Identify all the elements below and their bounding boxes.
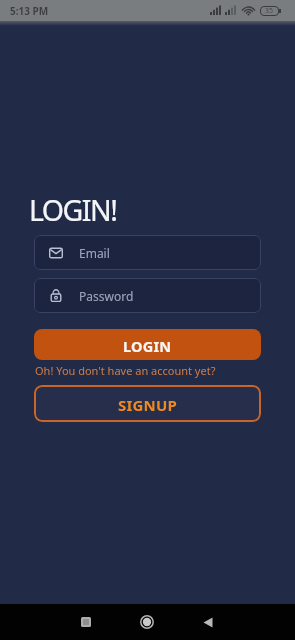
staticText: 5:13 PM bbox=[10, 4, 49, 18]
button[interactable] bbox=[76, 612, 96, 632]
button[interactable]: LOGIN bbox=[34, 329, 261, 360]
staticText: LOGIN! bbox=[29, 191, 117, 230]
staticText: Oh! You don't have an account yet? bbox=[35, 363, 216, 378]
button[interactable]: SIGNUP bbox=[34, 385, 261, 422]
button[interactable]: Email bbox=[34, 235, 261, 270]
button[interactable] bbox=[198, 612, 218, 632]
button[interactable]: Password bbox=[34, 278, 261, 313]
button[interactable] bbox=[137, 612, 157, 632]
staticText: 35 bbox=[265, 6, 274, 16]
staticText: SIGNUP bbox=[118, 395, 178, 415]
staticText: Email bbox=[79, 245, 110, 261]
staticText: Password bbox=[79, 288, 134, 304]
staticText: LOGIN bbox=[123, 336, 172, 356]
